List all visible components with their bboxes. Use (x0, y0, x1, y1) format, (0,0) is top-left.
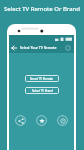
button[interactable]: Share (15, 115, 26, 126)
button[interactable]: Menu (64, 44, 72, 52)
staticText: Select TV Brand (32, 89, 53, 93)
staticText: Select TV Remote Or Brand (4, 5, 80, 13)
button[interactable]: Privacy policy (57, 115, 68, 126)
button[interactable]: Smart TV Remote (25, 75, 59, 82)
staticText: Select Your TV Remote (20, 45, 57, 50)
button[interactable]: Back (10, 44, 18, 52)
button[interactable]: Select TV Brand (25, 87, 59, 94)
staticText: Smart TV Remote (30, 77, 54, 81)
button[interactable]: Rate us (36, 115, 47, 126)
